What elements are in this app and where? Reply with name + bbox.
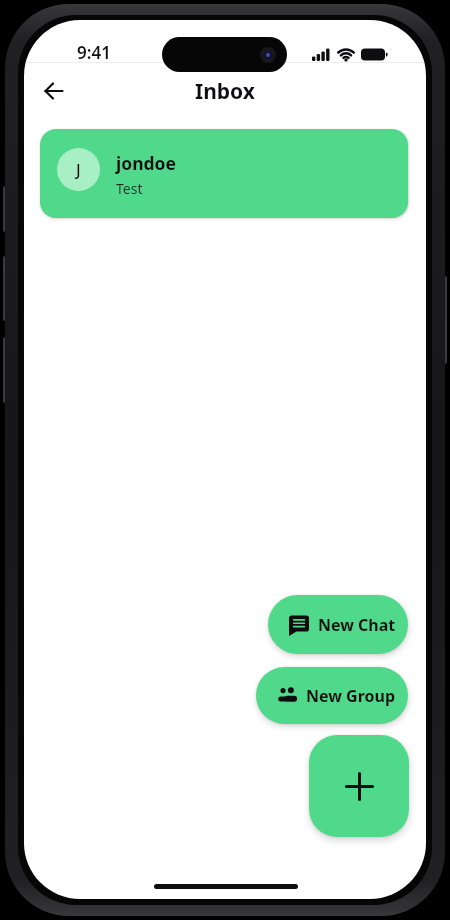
staticText: Inbox — [195, 77, 255, 105]
button[interactable]: New Group — [256, 667, 408, 724]
staticText: New Chat — [318, 614, 396, 636]
staticText: New Group — [306, 685, 396, 707]
staticText: J — [76, 159, 81, 181]
button[interactable] — [42, 79, 66, 103]
button[interactable]: New Chat — [268, 595, 408, 654]
staticText: Test — [116, 179, 143, 198]
button[interactable] — [309, 735, 409, 837]
staticText: 9:41 — [77, 41, 111, 64]
button[interactable]: J — [40, 129, 408, 218]
staticText: jondoe — [116, 151, 176, 175]
